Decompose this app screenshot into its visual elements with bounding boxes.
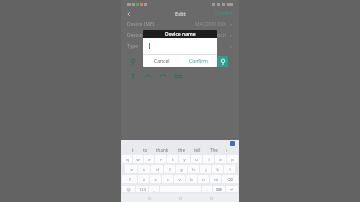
button[interactable]: to [143,147,148,153]
button[interactable]: 123 [136,186,148,192]
button[interactable]: Keyboard settings [230,141,235,146]
button[interactable]: › [226,147,228,153]
button[interactable]: j [200,165,211,173]
button[interactable]: x [150,175,161,183]
button[interactable]: Device type 6 [217,56,228,67]
button[interactable]: Confirm [180,55,217,67]
button[interactable]: z [138,175,149,183]
button[interactable]: s [138,165,150,173]
staticText: ⌨ [216,187,222,192]
staticText: n [202,177,205,182]
staticText: h [192,167,195,172]
button[interactable]: , [149,186,159,192]
staticText: ☺ [126,187,131,192]
button[interactable]: r [155,155,166,163]
staticText: › [226,147,228,153]
button[interactable]: Device name [121,30,239,41]
staticText: s [143,167,145,172]
staticText: m [214,177,218,182]
button[interactable]: Type [121,41,239,52]
button[interactable]: The [210,147,218,153]
staticText: 123 [139,187,146,192]
staticText: , [153,187,155,192]
staticText: . [206,187,208,192]
button[interactable]: p [227,155,238,163]
button[interactable]: tell [194,147,201,153]
button[interactable]: d [151,165,163,173]
button[interactable]: e [144,155,154,163]
button[interactable]: ⌨ [213,186,225,192]
button[interactable]: q [122,155,132,163]
staticText: f [169,167,171,172]
button[interactable]: Recents [208,195,214,201]
staticText: o [219,157,222,162]
button[interactable]: y [179,155,190,163]
button[interactable]: Device type 0 [127,56,138,67]
staticText: u [195,157,198,162]
staticText: y [183,157,186,162]
button[interactable]: b [186,175,197,183]
button[interactable]: Device type 9 [157,70,168,81]
staticText: Confirm [215,10,235,17]
button[interactable]: Back [146,195,152,201]
staticText: Confirm [189,58,209,65]
button[interactable]: Device type 4 [187,56,198,67]
button[interactable]: Device IMEI [121,19,239,30]
button[interactable]: Home [177,195,183,201]
staticText: q [126,157,129,162]
staticText: r [160,157,162,162]
button[interactable]: Device type 2 [157,56,168,67]
button[interactable]: the [178,147,185,153]
button[interactable]: Device type 10 [172,70,183,81]
staticText: z [143,177,145,182]
staticText: i [208,157,210,162]
staticText: ⌫ [227,177,233,182]
button[interactable]: Cancel [143,55,180,67]
staticText: ↵ [230,187,234,192]
button[interactable]: Device type 7 [127,70,138,81]
staticText: b [190,177,193,182]
button[interactable]: ↵ [226,186,238,192]
staticText: j [205,167,207,172]
staticText: Type [127,43,139,50]
button[interactable]: Back [125,10,133,18]
button[interactable]: ⇧ [122,175,137,183]
button[interactable]: Device type 8 [142,70,153,81]
button[interactable]: u [191,155,202,163]
staticText: MAC0001XXX [195,21,227,28]
staticText: d [156,167,159,172]
button[interactable]: i [203,155,214,163]
button[interactable]: w [133,155,143,163]
button[interactable]: Device type 5 [202,56,213,67]
button[interactable]: l [224,165,235,173]
staticText: watch [212,32,227,39]
button[interactable]: o [215,155,226,163]
button[interactable]: a [125,165,137,173]
button[interactable]: Confirm [215,10,235,17]
button[interactable]: m [210,175,221,183]
button[interactable]: ☺ [122,186,135,192]
staticText: e [148,157,151,162]
staticText: to [143,147,148,153]
button[interactable]: c [162,175,173,183]
button[interactable]: t [132,147,134,153]
button[interactable]: ⌫ [222,175,238,183]
staticText: p [231,157,234,162]
button[interactable]: thank [156,147,169,153]
button[interactable]: t [167,155,178,163]
button[interactable]: h [188,165,199,173]
button[interactable]: f [164,165,175,173]
button[interactable]: . [202,186,212,192]
button[interactable]: n [198,175,209,183]
button[interactable]: k [212,165,223,173]
staticText: w [136,157,140,162]
staticText: t [172,157,174,162]
button[interactable]: Device type 1 [142,56,153,67]
button[interactable]: v [174,175,185,183]
staticText: v [178,177,181,182]
staticText: a [130,167,133,172]
button[interactable]: g [176,165,187,173]
staticText: l [229,167,231,172]
